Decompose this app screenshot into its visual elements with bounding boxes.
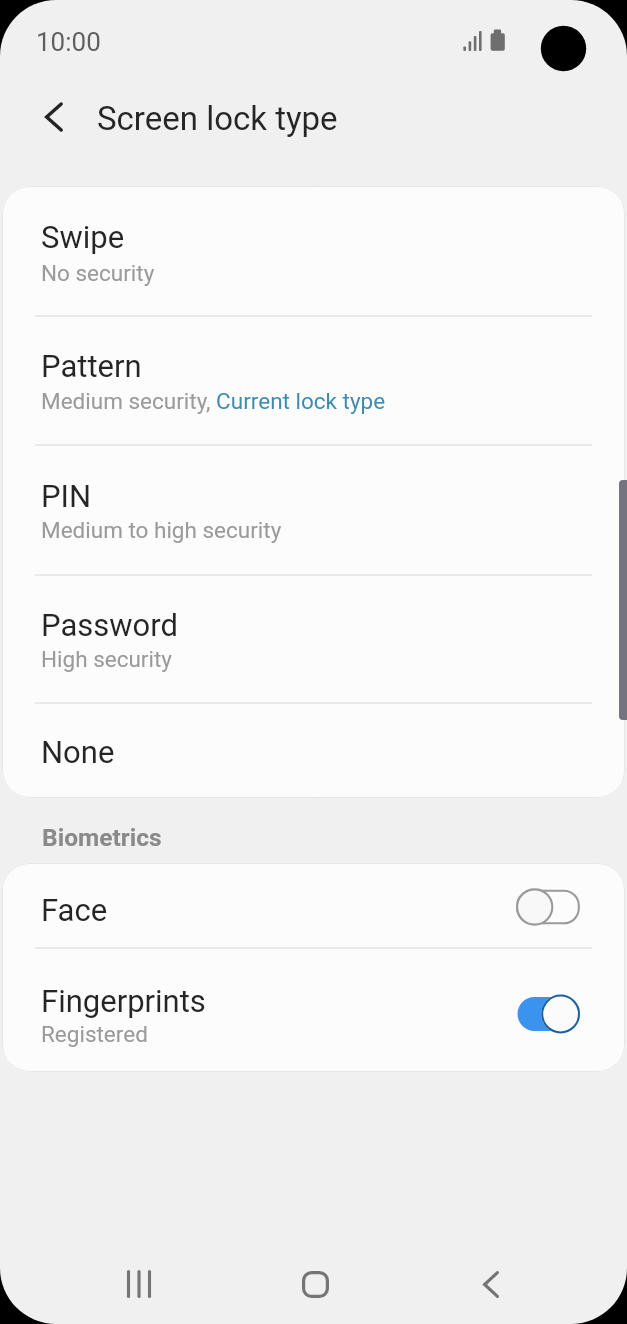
staticText: Medium to high security <box>41 517 282 543</box>
staticText: High security <box>41 646 172 672</box>
staticText: Face <box>41 892 108 928</box>
staticText: PIN <box>41 478 92 514</box>
button[interactable]: Home <box>278 1247 352 1321</box>
staticText: Medium security, Current lock type <box>41 388 386 414</box>
staticText: Registered <box>41 1021 148 1047</box>
button[interactable]: Password <box>0 574 627 702</box>
staticText: Swipe <box>41 219 125 255</box>
staticText: Fingerprints <box>41 983 206 1019</box>
button[interactable]: Fingerprints <box>0 948 627 1072</box>
button[interactable]: None <box>0 702 627 798</box>
button[interactable]: Navigate up <box>28 91 80 143</box>
staticText: Screen lock type <box>97 99 338 138</box>
button[interactable]: Face <box>0 863 627 948</box>
staticText: Password <box>41 607 178 643</box>
button[interactable]: Pattern <box>0 315 627 444</box>
button[interactable]: PIN <box>0 444 627 574</box>
button[interactable]: Switch on <box>510 987 586 1041</box>
staticText: 10:00 <box>36 27 101 57</box>
button[interactable]: Swipe <box>0 186 627 315</box>
button[interactable]: Back <box>454 1247 528 1321</box>
button[interactable]: Recent apps <box>102 1247 176 1321</box>
staticText: None <box>41 734 115 770</box>
staticText: Pattern <box>41 348 142 384</box>
staticText: Biometrics <box>42 823 162 852</box>
button[interactable]: Switch off <box>510 880 586 934</box>
staticText: No security <box>41 260 155 286</box>
